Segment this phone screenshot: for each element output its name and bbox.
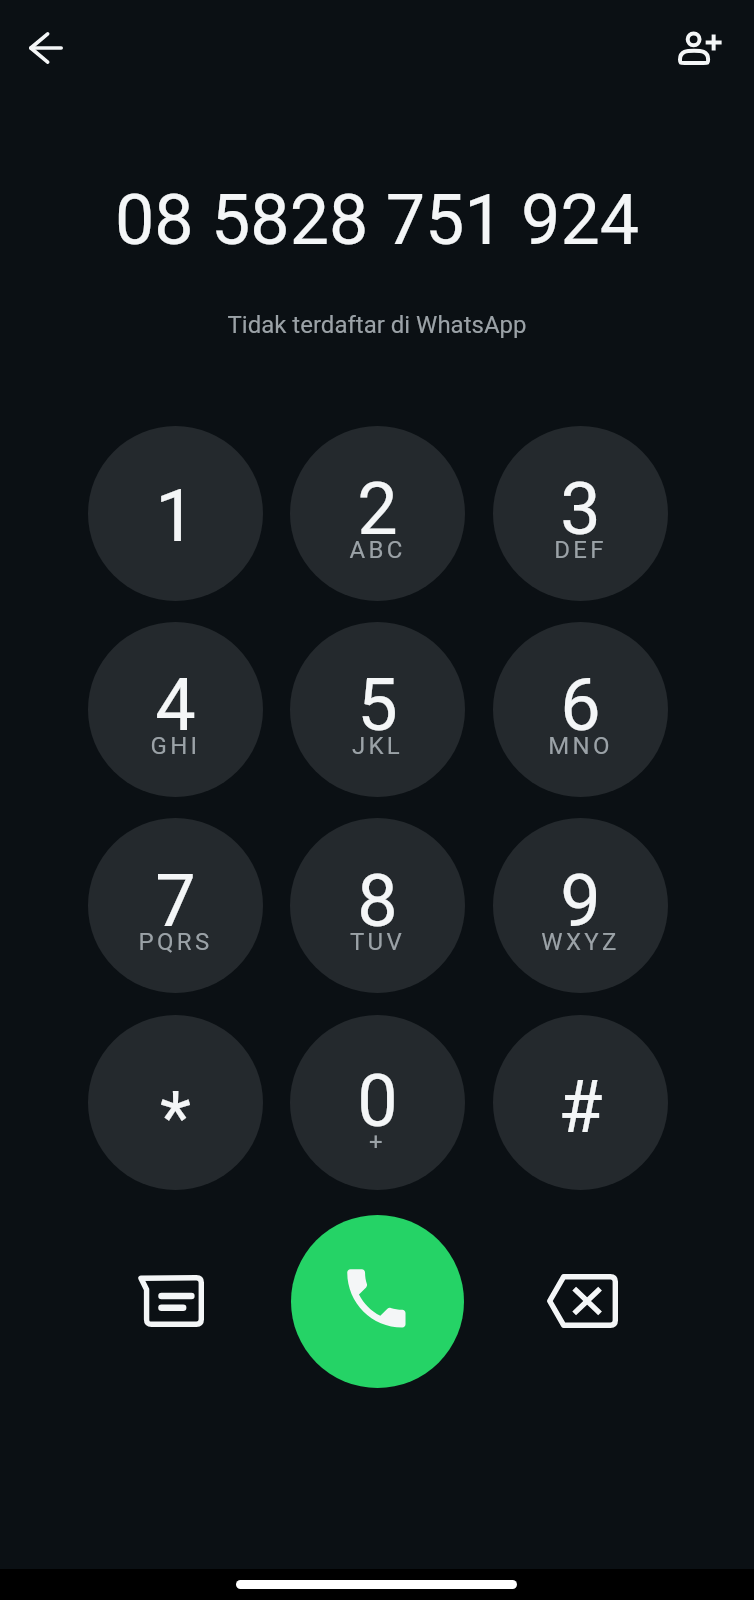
staticText: 6 (493, 663, 668, 747)
staticText: WXYZ (493, 928, 668, 956)
staticText: MNO (493, 732, 668, 760)
staticText: JKL (290, 732, 465, 760)
staticText: 0 (290, 1059, 465, 1143)
button[interactable]: 0 (290, 1015, 465, 1190)
staticText: Tidak terdaftar di WhatsApp (0, 311, 754, 339)
button[interactable]: 4 (88, 622, 263, 797)
button[interactable]: 6 (493, 622, 668, 797)
staticText: 1 (88, 474, 263, 558)
button[interactable]: 8 (290, 818, 465, 993)
staticText: ABC (290, 536, 465, 564)
staticText: 2 (290, 467, 465, 551)
button[interactable]: 9 (493, 818, 668, 993)
staticText: 8 (290, 859, 465, 943)
staticText: + (290, 1128, 465, 1156)
button[interactable]: 3 (493, 426, 668, 601)
staticText: DEF (493, 536, 668, 564)
button[interactable]: 5 (290, 622, 465, 797)
staticText: GHI (88, 732, 263, 760)
button[interactable]: * (88, 1015, 263, 1190)
button[interactable]: 1 (88, 426, 263, 601)
button[interactable]: Send message (116, 1246, 226, 1356)
staticText: * (88, 1076, 263, 1160)
staticText: 7 (88, 859, 263, 943)
staticText: 5 (290, 663, 465, 747)
button[interactable]: 7 (88, 818, 263, 993)
staticText: PQRS (88, 928, 263, 956)
staticText: 3 (493, 467, 668, 551)
staticText: 9 (493, 859, 668, 943)
button[interactable]: 2 (290, 426, 465, 601)
button[interactable]: Backspace (527, 1246, 637, 1356)
button[interactable]: # (493, 1015, 668, 1190)
button[interactable]: Back (12, 14, 80, 82)
staticText: # (493, 1065, 668, 1149)
staticText: 4 (88, 663, 263, 747)
staticText: TUV (290, 928, 465, 956)
staticText: 08 5828 751 924 (0, 179, 754, 261)
button[interactable]: Call (291, 1215, 464, 1388)
button[interactable]: Add to contacts (666, 14, 734, 82)
